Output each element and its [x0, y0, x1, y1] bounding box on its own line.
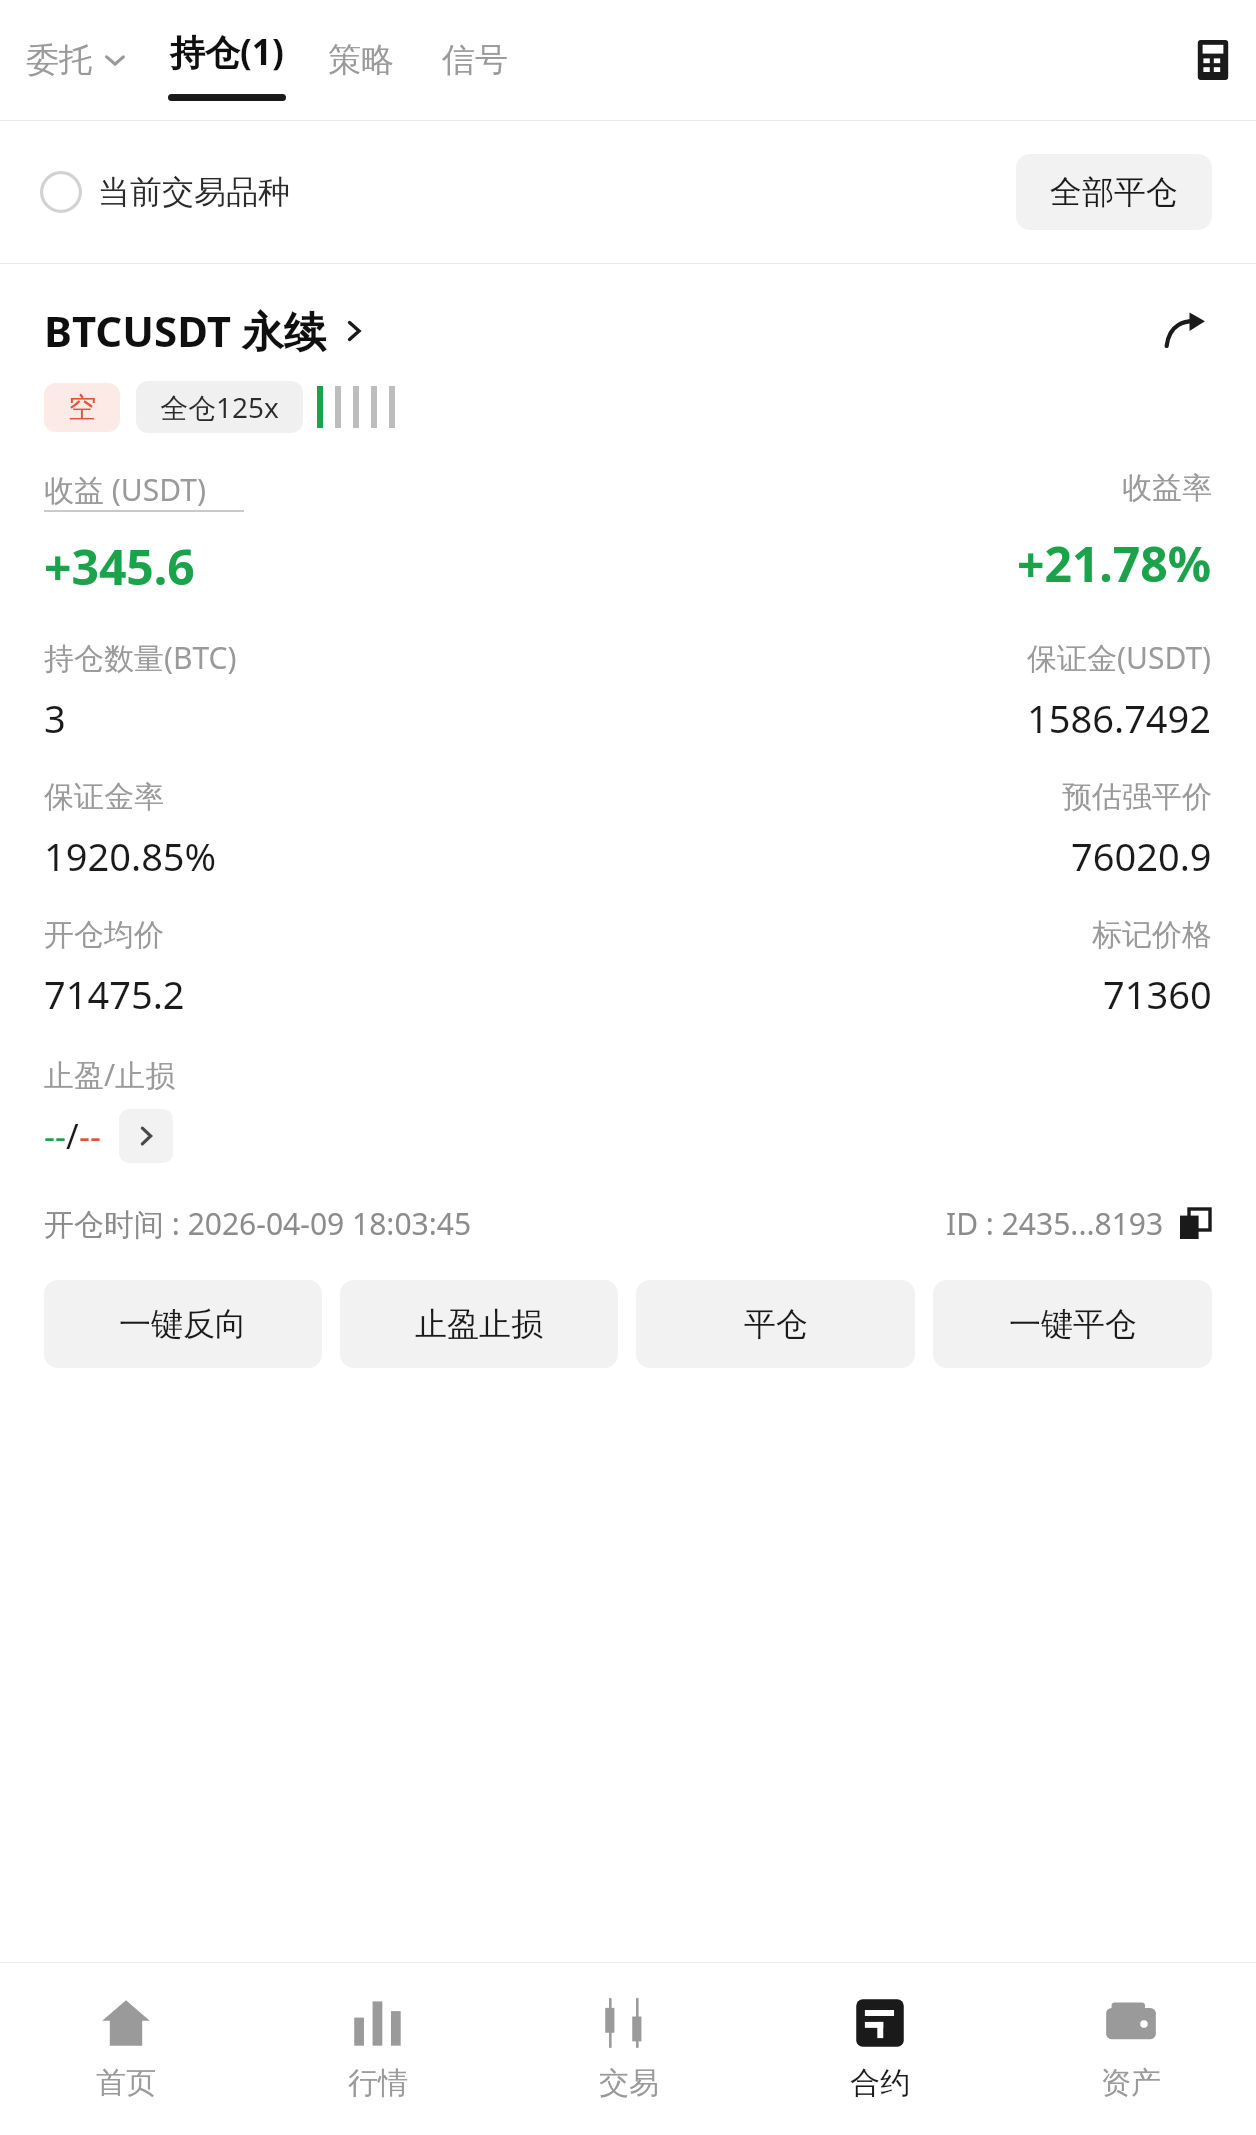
staticText: +21.78%	[1017, 531, 1212, 596]
button[interactable]: 一键平仓	[933, 1280, 1212, 1368]
staticText: 全部平仓	[1050, 172, 1178, 212]
staticText: 交易	[599, 2064, 659, 2102]
staticText: 收益 (USDT)	[44, 469, 206, 510]
staticText: +345.6	[44, 534, 195, 599]
staticText: BTCUSDT 永续	[44, 302, 326, 359]
button[interactable]: 交易	[503, 1963, 754, 2135]
button[interactable]: 全部平仓	[1016, 154, 1212, 230]
button[interactable]: 平仓	[636, 1280, 915, 1368]
staticText: 合约	[850, 2064, 910, 2102]
staticText: 一键平仓	[1009, 1304, 1137, 1344]
staticText: 止盈止损	[415, 1304, 543, 1344]
staticText: 资产	[1101, 2064, 1161, 2102]
button[interactable]: 一键反向	[44, 1280, 322, 1368]
staticText: 76020.9	[1071, 830, 1212, 882]
staticText: 平仓	[744, 1304, 808, 1344]
staticText: --	[79, 1113, 101, 1159]
other: Copy ID	[1178, 1207, 1212, 1241]
button[interactable]: ID : 2435...8193	[946, 1203, 1212, 1244]
button[interactable]: BTCUSDT 永续	[44, 302, 368, 359]
staticText: 首页	[96, 2064, 156, 2102]
staticText: 1586.7492	[1027, 692, 1212, 744]
staticText: 行情	[348, 2064, 408, 2102]
staticText: 3	[44, 692, 66, 744]
staticText: --	[44, 1113, 66, 1159]
staticText: 标记价格	[1092, 916, 1212, 954]
staticText: 1920.85%	[44, 830, 217, 882]
button[interactable]: 当前交易品种	[40, 171, 290, 213]
button[interactable]: 首页	[0, 1963, 252, 2135]
staticText: ID : 2435...8193	[946, 1203, 1164, 1244]
staticText: 开仓时间 : 2026-04-09 18:03:45	[44, 1203, 472, 1244]
staticText: 保证金(USDT)	[1027, 637, 1212, 678]
button[interactable]: 止盈止损	[340, 1280, 618, 1368]
staticText: /	[66, 1113, 79, 1159]
staticText: 持仓(1)	[170, 28, 284, 76]
button[interactable]: 信号	[436, 39, 514, 81]
button[interactable]: 合约	[754, 1963, 1005, 2135]
staticText: 委托	[26, 39, 92, 81]
staticText: 持仓数量(BTC)	[44, 637, 237, 678]
staticText: 71475.2	[44, 968, 185, 1020]
staticText: 一键反向	[119, 1304, 247, 1344]
staticText: 预估强平价	[1062, 778, 1212, 816]
staticText: 空	[68, 390, 96, 425]
staticText: 保证金率	[44, 778, 164, 816]
button[interactable]: 策略	[322, 39, 400, 81]
button[interactable]: Share	[1160, 305, 1212, 357]
button[interactable]: 持仓(1)	[168, 0, 286, 120]
button[interactable]: 行情	[252, 1963, 503, 2135]
button[interactable]: --	[44, 1109, 173, 1163]
staticText: 开仓均价	[44, 916, 164, 954]
staticText: 全仓125x	[160, 388, 279, 426]
button[interactable]: Calculator	[1190, 37, 1236, 83]
staticText: 71360	[1103, 968, 1212, 1020]
staticText: 当前交易品种	[98, 172, 290, 212]
staticText: 止盈/止损	[44, 1054, 176, 1095]
staticText: 收益率	[1122, 469, 1212, 507]
button[interactable]: 委托	[22, 39, 132, 81]
button[interactable]: 资产	[1005, 1963, 1256, 2135]
